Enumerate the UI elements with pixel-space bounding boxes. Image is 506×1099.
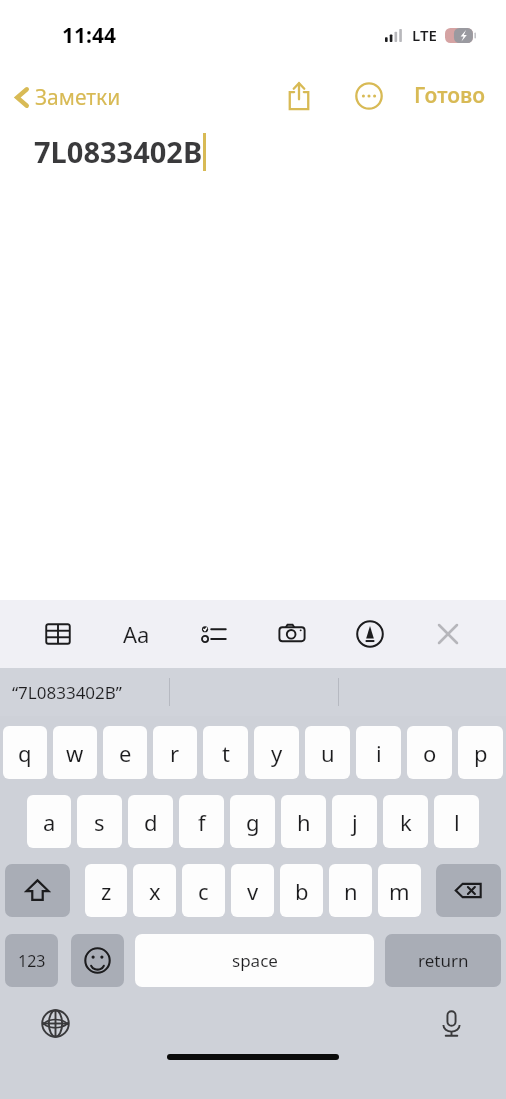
staticText: k	[400, 807, 412, 837]
staticText: e	[119, 738, 132, 768]
button[interactable]: b	[280, 864, 323, 917]
staticText: p	[474, 738, 488, 768]
button[interactable]: Markup	[352, 616, 388, 652]
staticText: return	[418, 949, 469, 972]
button[interactable]: Camera	[274, 616, 310, 652]
button[interactable]: Dictation	[430, 1002, 472, 1044]
button[interactable]: l	[434, 795, 479, 848]
button[interactable]: s	[77, 795, 122, 848]
staticText: Готово	[414, 81, 486, 110]
button[interactable]: Shift	[5, 864, 70, 917]
button[interactable]: t	[203, 726, 248, 779]
button[interactable]: d	[128, 795, 173, 848]
staticText: 11:44	[62, 21, 116, 50]
staticText: d	[144, 807, 158, 837]
staticText: c	[198, 876, 209, 906]
staticText: 7L0833402B	[34, 132, 203, 171]
staticText: x	[149, 876, 161, 906]
button[interactable]: o	[407, 726, 452, 779]
button[interactable]: x	[133, 864, 176, 917]
button[interactable]: v	[231, 864, 274, 917]
button[interactable]: f	[179, 795, 224, 848]
button[interactable]: k	[383, 795, 428, 848]
button[interactable]: Emoji	[71, 934, 124, 987]
button[interactable]: Заметки	[10, 79, 125, 116]
button[interactable]: w	[53, 726, 97, 779]
button[interactable]: Hide keyboard	[430, 616, 466, 652]
staticText: r	[170, 738, 180, 768]
button[interactable]: Aa	[118, 616, 154, 652]
button[interactable]: z	[85, 864, 127, 917]
staticText: l	[454, 807, 460, 837]
button[interactable]: m	[378, 864, 421, 917]
staticText: u	[321, 738, 335, 768]
button[interactable]: Table	[40, 616, 76, 652]
staticText: n	[344, 876, 358, 906]
staticText: h	[297, 807, 311, 837]
staticText: b	[295, 876, 309, 906]
staticText: space	[232, 949, 278, 972]
staticText: 123	[18, 950, 46, 972]
button[interactable]: y	[254, 726, 299, 779]
staticText: a	[43, 807, 56, 837]
button[interactable]: n	[329, 864, 372, 917]
button[interactable]: u	[305, 726, 350, 779]
staticText: g	[246, 807, 260, 837]
staticText: y	[271, 738, 283, 768]
staticText: LTE	[412, 25, 437, 45]
button[interactable]: More options	[348, 75, 390, 117]
staticText: “7L0833402B”	[12, 681, 122, 704]
button[interactable]: Готово	[408, 73, 492, 118]
staticText: w	[66, 738, 84, 768]
staticText: v	[247, 876, 259, 906]
button[interactable]: “7L0833402B”	[0, 675, 134, 710]
button[interactable]: j	[332, 795, 377, 848]
staticText: o	[423, 738, 437, 768]
button[interactable]: e	[103, 726, 147, 779]
button[interactable]: 123	[5, 934, 58, 987]
button[interactable]: Backspace	[436, 864, 501, 917]
staticText: f	[198, 807, 206, 837]
staticText: m	[389, 876, 410, 906]
button[interactable]: space	[135, 934, 374, 987]
button[interactable]: a	[27, 795, 71, 848]
button[interactable]: Checklist	[196, 616, 232, 652]
staticText: s	[94, 807, 105, 837]
button[interactable]: p	[458, 726, 503, 779]
staticText: q	[18, 738, 32, 768]
button[interactable]: i	[356, 726, 401, 779]
button[interactable]: return	[385, 934, 501, 987]
staticText: z	[101, 876, 112, 906]
button[interactable]: c	[182, 864, 225, 917]
button[interactable]: g	[230, 795, 275, 848]
staticText: t	[222, 738, 230, 768]
button[interactable]: q	[3, 726, 47, 779]
staticText: j	[352, 807, 358, 837]
staticText: Заметки	[35, 83, 121, 112]
button[interactable]: Share	[278, 75, 320, 117]
staticText: Aa	[123, 619, 150, 649]
button[interactable]: Change keyboard	[34, 1002, 76, 1044]
button[interactable]: r	[153, 726, 197, 779]
staticText: i	[376, 738, 382, 768]
button[interactable]: h	[281, 795, 326, 848]
